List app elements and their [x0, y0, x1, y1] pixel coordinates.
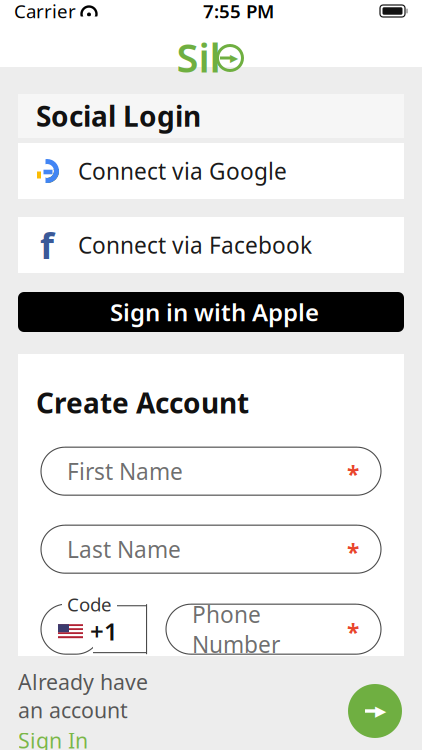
button[interactable]: Sign In — [18, 726, 174, 750]
staticText: Sign in with Apple — [110, 296, 319, 328]
staticText: * — [347, 537, 359, 567]
staticText: ▶ — [375, 703, 386, 719]
staticText: Connect via Facebook — [78, 230, 312, 260]
staticText: Social Login — [36, 97, 201, 135]
button[interactable]: Connect via Google — [18, 143, 404, 199]
staticText: Code — [67, 592, 112, 617]
staticText: Sil — [176, 30, 220, 83]
staticText: First Name — [67, 456, 183, 486]
staticText: Create Account — [36, 384, 249, 421]
button[interactable]: Continue — [348, 684, 402, 738]
staticText: Last Name — [67, 534, 181, 564]
staticText: * — [347, 459, 359, 489]
button[interactable]: f — [18, 217, 404, 273]
button[interactable] — [18, 292, 404, 332]
staticText: * — [347, 617, 359, 647]
staticText: 7:55 PM — [203, 0, 274, 23]
button[interactable]: Code — [41, 603, 154, 655]
staticText: +1 — [90, 615, 118, 647]
staticText: Sign In — [18, 726, 88, 750]
button[interactable]: Last Name — [41, 525, 381, 573]
staticText: ▶ — [230, 52, 238, 64]
staticText: Carrier — [14, 0, 76, 23]
staticText: Connect via Google — [78, 156, 287, 186]
staticText: f — [40, 221, 54, 269]
staticText: Already have an account — [18, 667, 148, 724]
button[interactable]: First Name — [41, 447, 381, 495]
staticText: Phone Number — [192, 599, 280, 659]
button[interactable]: Phone Number — [166, 604, 381, 654]
